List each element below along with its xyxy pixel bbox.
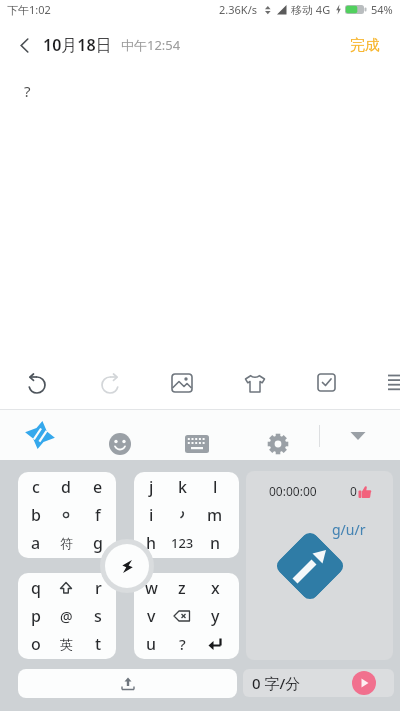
staticText: h — [146, 532, 157, 554]
staticText: u — [146, 633, 157, 655]
staticText: 移动 4G — [291, 2, 331, 17]
button[interactable] — [244, 374, 266, 394]
staticText: l — [213, 476, 218, 498]
staticText: w — [145, 577, 158, 599]
button[interactable]: c — [18, 472, 116, 558]
staticText: a — [31, 532, 41, 554]
staticText: g — [93, 532, 103, 554]
staticText: ? — [179, 634, 186, 654]
button[interactable]: 完成 — [346, 32, 384, 59]
staticText: f — [95, 504, 101, 526]
staticText: c — [32, 476, 40, 498]
staticText: @ — [60, 607, 73, 626]
staticText: d — [61, 476, 71, 498]
staticText: 2.36K/s — [219, 2, 257, 17]
staticText: q — [31, 577, 41, 599]
staticText: 0 字/分 — [252, 673, 301, 693]
button[interactable] — [184, 434, 210, 460]
staticText: k — [178, 476, 187, 498]
staticText: v — [147, 605, 156, 627]
button[interactable] — [273, 529, 347, 603]
staticText: m — [207, 504, 223, 526]
staticText: 0 — [350, 483, 357, 499]
staticText: p — [31, 605, 41, 627]
staticText: ? — [24, 81, 31, 101]
staticText: g/u/r — [332, 520, 366, 539]
button[interactable] — [316, 372, 338, 394]
staticText: 10月18日 — [43, 34, 112, 56]
button[interactable] — [14, 35, 34, 55]
staticText: y — [211, 605, 220, 627]
button[interactable]: q — [18, 573, 116, 659]
button[interactable]: j — [134, 472, 239, 558]
button[interactable] — [266, 432, 290, 456]
staticText: o — [31, 633, 41, 655]
staticText: e — [93, 476, 103, 498]
staticText: r — [95, 577, 102, 599]
button[interactable] — [18, 669, 237, 698]
button[interactable] — [105, 544, 149, 588]
button[interactable]: 0 字/分 — [243, 669, 394, 697]
button[interactable] — [24, 371, 50, 397]
button[interactable] — [170, 371, 194, 395]
staticText: 00:00:00 — [269, 483, 317, 499]
staticText: 符 — [60, 535, 73, 551]
button[interactable] — [23, 419, 57, 451]
staticText: x — [211, 577, 220, 599]
staticText: z — [178, 577, 186, 599]
staticText: 54% — [371, 2, 393, 17]
staticText: s — [94, 605, 102, 627]
button[interactable]: w — [134, 573, 239, 659]
button[interactable] — [108, 432, 132, 456]
staticText: j — [149, 476, 154, 498]
staticText: 中午12:54 — [121, 36, 181, 54]
staticText: 123 — [171, 534, 194, 552]
staticText: b — [31, 504, 41, 526]
staticText: t — [95, 633, 102, 655]
staticText: n — [210, 532, 221, 554]
button[interactable] — [97, 371, 123, 397]
staticText: 完成 — [350, 36, 380, 55]
staticText: i — [149, 504, 154, 526]
staticText: 英 — [60, 636, 73, 652]
button[interactable] — [349, 429, 367, 443]
button[interactable] — [388, 372, 400, 394]
staticText: 下午1:02 — [7, 2, 51, 17]
